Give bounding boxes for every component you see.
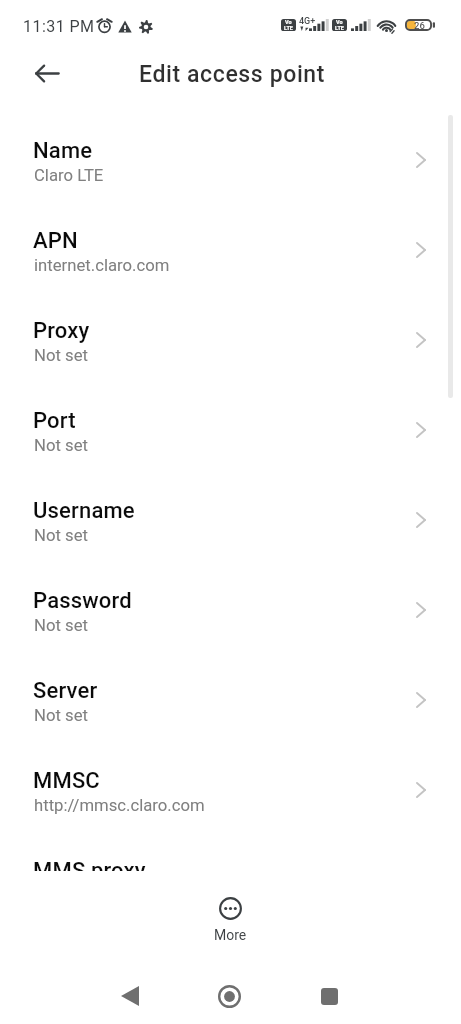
staticText: Not set (34, 436, 88, 456)
button[interactable]: Username (0, 474, 461, 564)
staticText: Server (33, 678, 98, 704)
staticText: Not set (34, 346, 88, 366)
staticText: Port (33, 408, 76, 434)
button[interactable]: More (196, 891, 264, 949)
staticText: Name (33, 138, 93, 164)
staticText: 11:31 PM (23, 17, 95, 36)
button[interactable]: Back (29, 55, 65, 91)
button[interactable]: MMS proxy (0, 834, 461, 871)
staticText: 26 (414, 20, 425, 31)
staticText: Proxy (33, 318, 90, 344)
staticText: MMSC (33, 768, 100, 794)
staticText: 4G+ (299, 16, 316, 27)
staticText: MMS proxy (33, 858, 146, 871)
staticText: Not set (34, 706, 88, 726)
button[interactable]: Recents (305, 972, 353, 1020)
staticText: More (214, 927, 247, 943)
button[interactable]: APN (0, 204, 461, 294)
staticText: Not set (34, 616, 88, 636)
button[interactable]: Password (0, 564, 461, 654)
staticText: Vo (336, 19, 343, 25)
staticText: LTE (335, 25, 344, 31)
staticText: Vo (285, 19, 292, 25)
staticText: Not set (34, 526, 88, 546)
staticText: LTE (284, 25, 293, 31)
button[interactable]: Proxy (0, 294, 461, 384)
staticText: http://mmsc.claro.com (34, 796, 205, 816)
staticText: internet.claro.com (34, 256, 170, 276)
button[interactable]: Name (0, 114, 461, 204)
staticText: Edit access point (139, 61, 326, 88)
staticText: Claro LTE (34, 166, 104, 186)
staticText: Password (33, 588, 132, 614)
staticText: APN (33, 228, 78, 254)
button[interactable]: Back (106, 972, 154, 1020)
button[interactable]: Port (0, 384, 461, 474)
button[interactable]: MMSC (0, 744, 461, 834)
button[interactable]: Server (0, 654, 461, 744)
button[interactable]: Home (205, 972, 253, 1020)
staticText: Username (33, 498, 135, 524)
